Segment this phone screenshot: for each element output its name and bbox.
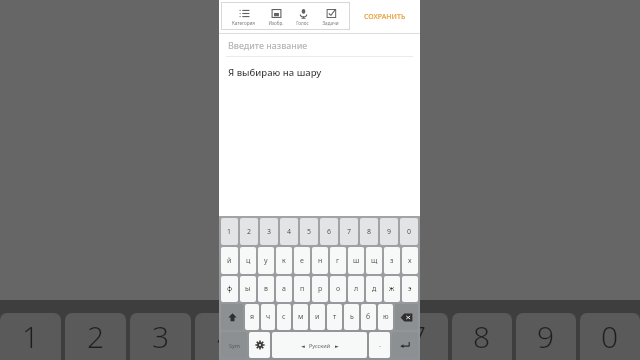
button[interactable]: Sym [221, 332, 247, 358]
button[interactable]: з [384, 247, 400, 274]
staticText: 7 [347, 227, 352, 237]
button[interactable]: с [277, 304, 291, 330]
button[interactable]: Категория [231, 7, 256, 26]
staticText: 9 [537, 316, 555, 357]
button[interactable]: ы [240, 276, 256, 302]
button[interactable]: в [258, 276, 274, 302]
button[interactable]: Ввод [392, 332, 418, 358]
button[interactable]: л [348, 276, 364, 302]
staticText: 4 [217, 316, 235, 357]
button[interactable]: 2 [240, 218, 258, 245]
button[interactable]: Задачи [321, 7, 340, 26]
staticText: Категория [232, 20, 255, 26]
staticText: с [282, 312, 286, 322]
button[interactable]: Голос [295, 7, 310, 26]
staticText: 1 [227, 227, 232, 237]
staticText: х [408, 256, 412, 266]
button[interactable]: я [245, 304, 259, 330]
button[interactable]: ь [344, 304, 359, 330]
button[interactable]: Удалить [395, 304, 418, 330]
staticText: Русский [309, 342, 331, 349]
button[interactable]: м [293, 304, 308, 330]
button[interactable]: п [294, 276, 310, 302]
staticText: 5 [281, 316, 299, 357]
button[interactable]: о [330, 276, 346, 302]
staticText: 5 [307, 227, 312, 237]
staticText: э [408, 284, 412, 294]
staticText: 6 [327, 227, 332, 237]
button[interactable]: ж [384, 276, 400, 302]
button[interactable]: а [276, 276, 292, 302]
staticText: ю [383, 312, 389, 322]
button[interactable]: у [258, 247, 274, 274]
staticText: . [379, 340, 381, 350]
button[interactable]: 6 [320, 218, 338, 245]
staticText: а [282, 284, 286, 294]
staticText: 0 [407, 227, 412, 237]
staticText: л [354, 284, 359, 294]
button[interactable]: 8 [360, 218, 378, 245]
button[interactable]: д [366, 276, 382, 302]
button[interactable]: СОХРАНИТЬ [350, 0, 420, 33]
button[interactable]: е [294, 247, 310, 274]
button[interactable]: 7 [340, 218, 358, 245]
button[interactable]: 1 [221, 218, 238, 245]
button[interactable]: й [221, 247, 238, 274]
button[interactable]: н [312, 247, 328, 274]
button[interactable]: 9 [380, 218, 398, 245]
staticText: й [227, 256, 232, 266]
button[interactable]: э [402, 276, 418, 302]
staticText: 1 [22, 316, 40, 357]
button[interactable]: т [327, 304, 342, 330]
staticText: п [300, 284, 305, 294]
staticText: 2 [87, 316, 105, 357]
other: Голос [298, 8, 309, 19]
staticText: Введите название [228, 39, 308, 51]
staticText: о [336, 284, 341, 294]
button[interactable]: ч [261, 304, 275, 330]
staticText: 0 [601, 316, 619, 357]
staticText: ► [335, 343, 339, 349]
staticText: е [300, 256, 304, 266]
staticText: ◄ [301, 343, 305, 349]
button[interactable]: 0 [400, 218, 418, 245]
button[interactable]: ц [240, 247, 256, 274]
staticText: д [372, 284, 377, 294]
button[interactable]: Shift [221, 304, 243, 330]
staticText: Голос [296, 20, 309, 26]
button[interactable]: 3 [260, 218, 278, 245]
staticText: 6 [345, 316, 363, 357]
staticText: ф [227, 284, 233, 294]
button[interactable]: щ [366, 247, 382, 274]
button[interactable]: ю [378, 304, 393, 330]
staticText: т [333, 312, 337, 322]
staticText: СОХРАНИТЬ [364, 12, 406, 22]
button[interactable]: к [276, 247, 292, 274]
staticText: ы [245, 284, 251, 294]
button[interactable]: Введите название [228, 34, 420, 56]
button[interactable]: 5 [300, 218, 318, 245]
button[interactable]: б [361, 304, 376, 330]
staticText: г [336, 256, 340, 266]
button[interactable]: и [310, 304, 325, 330]
button[interactable]: . [369, 332, 390, 358]
button[interactable]: 4 [280, 218, 298, 245]
button[interactable]: Настройки [249, 332, 270, 358]
staticText: Sym [229, 342, 240, 349]
button[interactable]: ш [348, 247, 364, 274]
button[interactable]: ◄ [272, 332, 367, 358]
staticText: 8 [367, 227, 372, 237]
button[interactable]: г [330, 247, 346, 274]
staticText: и [315, 312, 320, 322]
button[interactable]: Изображение [267, 7, 285, 26]
staticText: б [366, 312, 371, 322]
staticText: 3 [152, 316, 170, 357]
button[interactable]: Я выбираю на шару [228, 66, 420, 216]
staticText: 9 [387, 227, 392, 237]
staticText: ь [350, 312, 354, 322]
button[interactable]: р [312, 276, 328, 302]
button[interactable]: ф [221, 276, 238, 302]
staticText: р [318, 284, 323, 294]
other: Категория [239, 8, 250, 19]
button[interactable]: х [402, 247, 418, 274]
